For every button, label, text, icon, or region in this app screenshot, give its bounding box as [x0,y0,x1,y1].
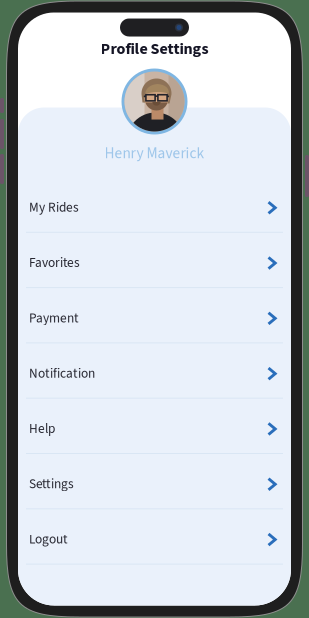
staticText: Favorites [29,253,80,272]
button[interactable]: Settings [18,454,291,509]
staticText: Payment [29,309,79,328]
staticText: My Rides [29,198,79,217]
staticText: Henry Maverick [104,142,204,164]
staticText: Logout [29,530,68,549]
button[interactable]: Payment [18,288,291,343]
button[interactable]: Notification [18,343,291,399]
staticText: Help [29,419,55,438]
button[interactable]: Logout [18,509,291,565]
button[interactable]: Help [18,399,291,454]
staticText: Settings [29,475,74,494]
button[interactable]: Favorites [18,233,291,288]
staticText: Notification [29,364,95,383]
staticText: Profile Settings [100,37,208,60]
button[interactable]: My Rides [18,177,291,233]
